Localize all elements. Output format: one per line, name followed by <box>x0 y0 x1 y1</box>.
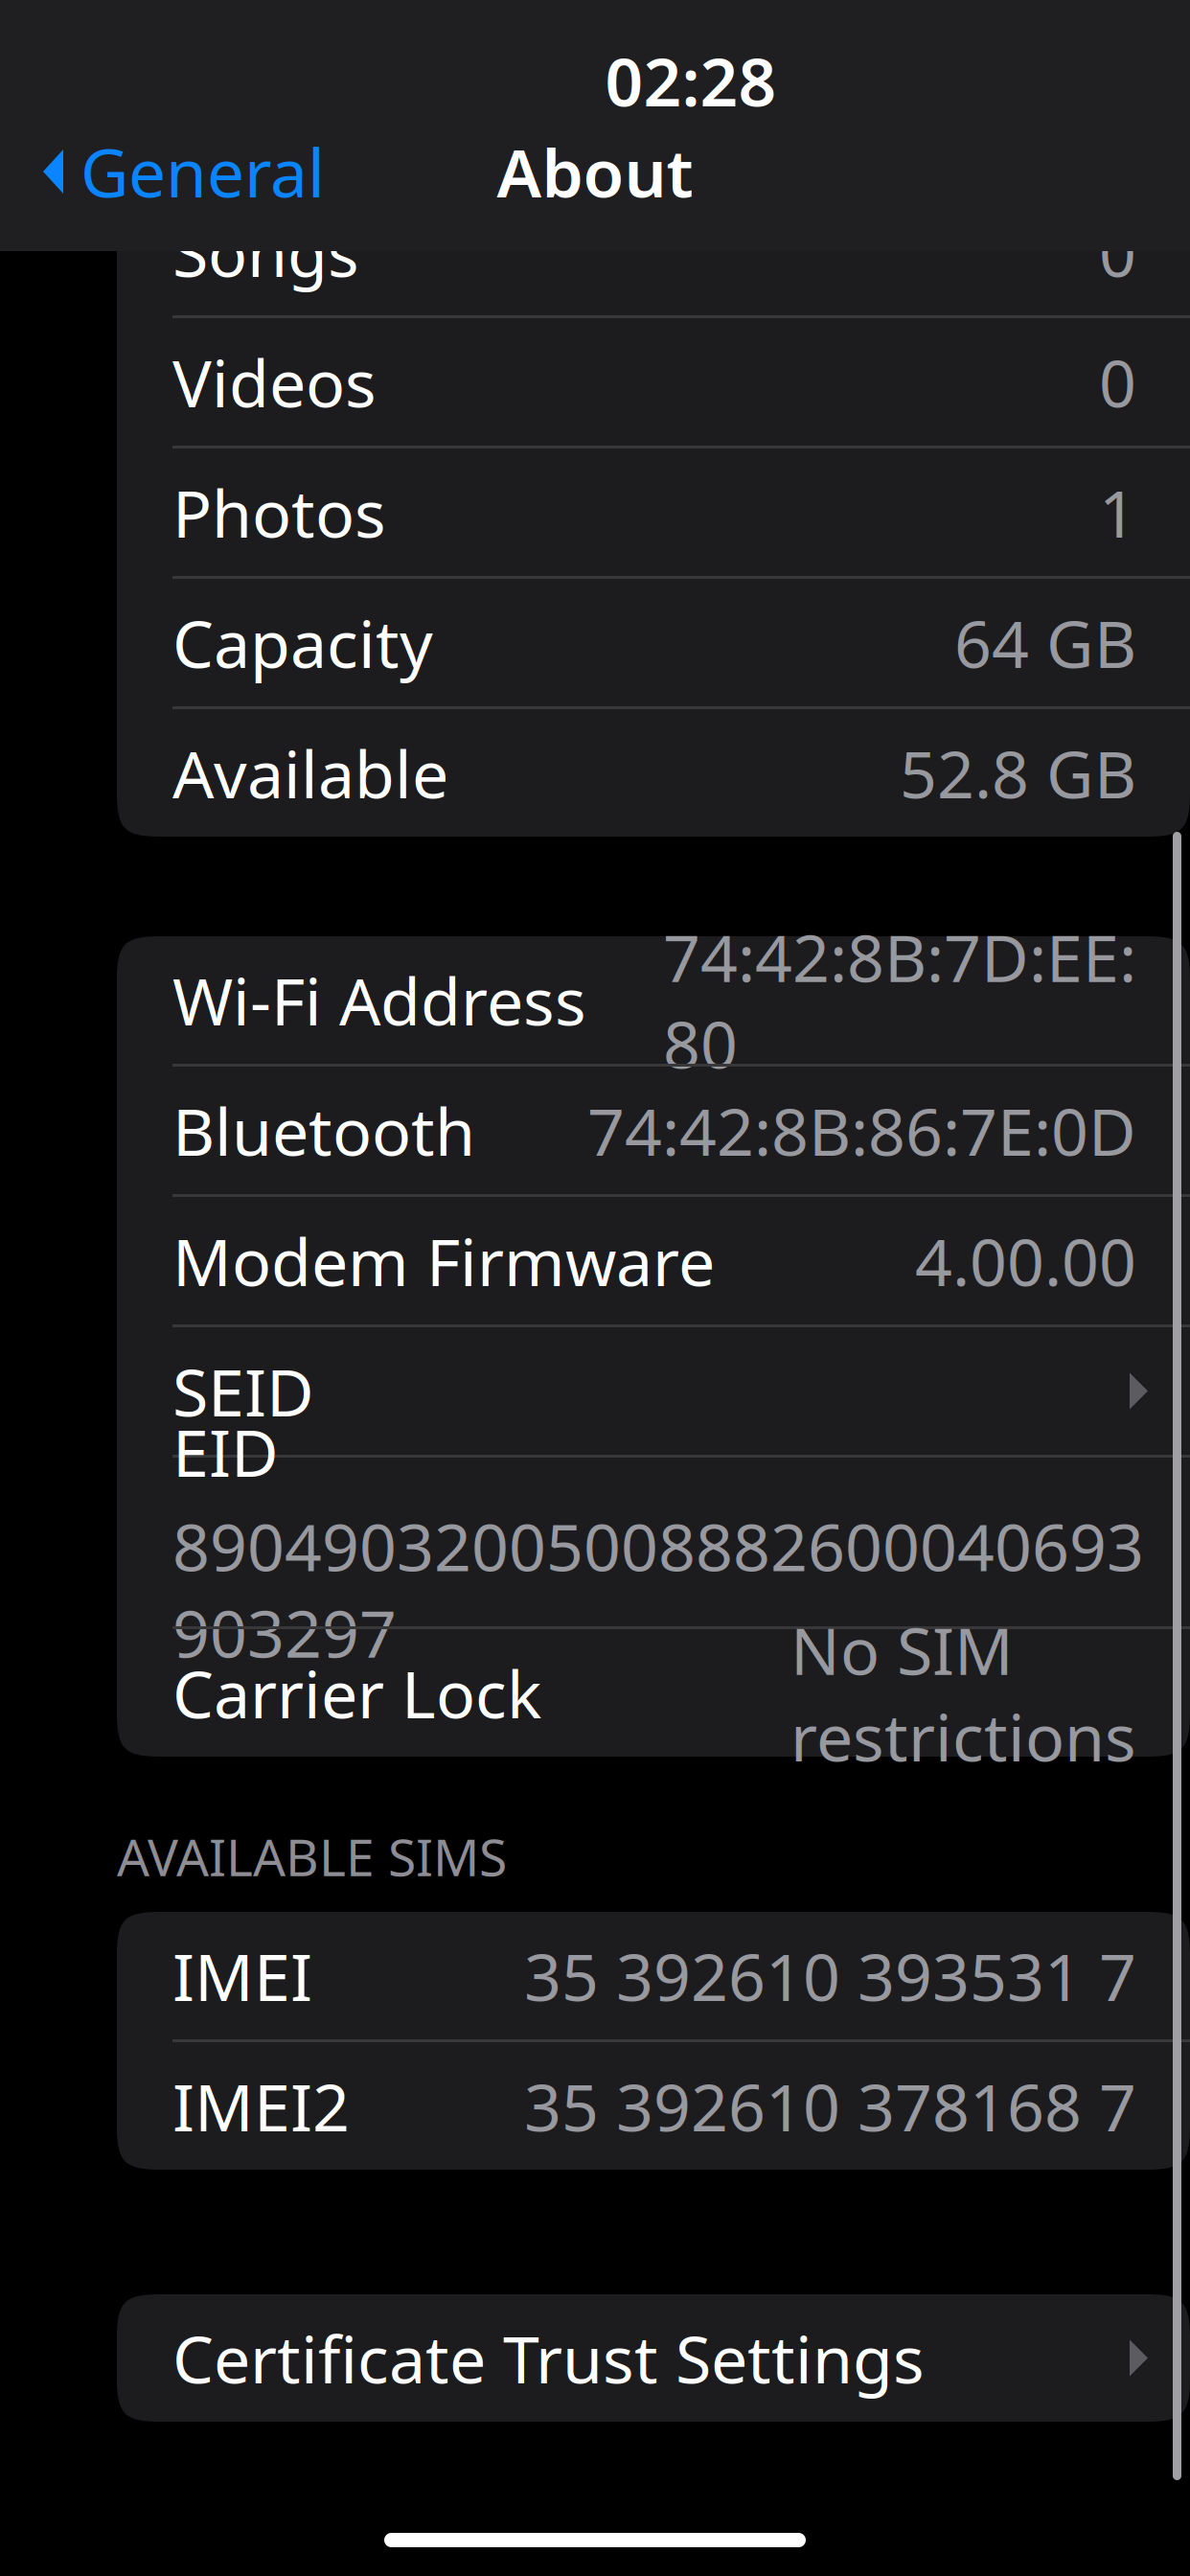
button[interactable]: Videos <box>117 318 1190 446</box>
button[interactable]: Capacity <box>117 579 1190 706</box>
staticText: SEID <box>172 1348 314 1434</box>
staticText: 35 392610 378168 7 <box>524 2063 1136 2149</box>
button[interactable]: SEID <box>117 1327 1190 1455</box>
staticText: EID <box>172 1408 279 1495</box>
staticText: AVAILABLE SIMS <box>117 1822 507 1890</box>
staticText: 0 <box>1099 339 1136 425</box>
button[interactable]: IMEI2 <box>117 2042 1190 2170</box>
staticText: 1 <box>1099 469 1136 555</box>
button[interactable]: General <box>0 119 344 224</box>
staticText: 52.8 GB <box>900 730 1136 816</box>
staticText: Bluetooth <box>172 1087 475 1174</box>
button[interactable]: Wi-Fi Address <box>117 936 1190 1064</box>
staticText: No SIM restrictions <box>790 1606 1136 1779</box>
staticText: IMEI <box>172 1932 312 2019</box>
button[interactable]: Songs <box>117 188 1190 315</box>
staticText: Videos <box>172 339 377 425</box>
button[interactable]: Certificate Trust Settings <box>117 2294 1190 2422</box>
staticText: Photos <box>172 469 386 555</box>
staticText: Carrier Lock <box>172 1650 541 1736</box>
staticText: IMEI2 <box>172 2063 350 2149</box>
staticText: Songs <box>172 208 359 295</box>
staticText: 4.00.00 <box>915 1217 1136 1304</box>
button[interactable]: Carrier Lock <box>117 1629 1190 1757</box>
button[interactable]: Available <box>117 709 1190 837</box>
button[interactable]: IMEI <box>117 1912 1190 2039</box>
button[interactable]: Modem Firmware <box>117 1197 1190 1324</box>
staticText: 0 <box>1099 208 1136 295</box>
staticText: 89049032005008882600040693903297 <box>172 1502 1144 1676</box>
button[interactable]: EID <box>117 1458 1190 1626</box>
staticText: 35 392610 393531 7 <box>524 1932 1136 2019</box>
staticText: General <box>80 127 325 216</box>
staticText: Modem Firmware <box>172 1217 715 1304</box>
staticText: 74:42:8B:7D:EE:80 <box>663 913 1136 1087</box>
button[interactable]: Bluetooth <box>117 1067 1190 1194</box>
button[interactable]: Photos <box>117 448 1190 576</box>
staticText: Certificate Trust Settings <box>172 2315 925 2401</box>
staticText: 64 GB <box>954 599 1136 686</box>
staticText: 02:28 <box>605 36 777 125</box>
staticText: 74:42:8B:86:7E:0D <box>587 1087 1136 1174</box>
staticText: Available <box>172 730 448 816</box>
staticText: About <box>497 127 693 216</box>
staticText: Capacity <box>172 599 433 686</box>
staticText: Wi-Fi Address <box>172 957 586 1043</box>
